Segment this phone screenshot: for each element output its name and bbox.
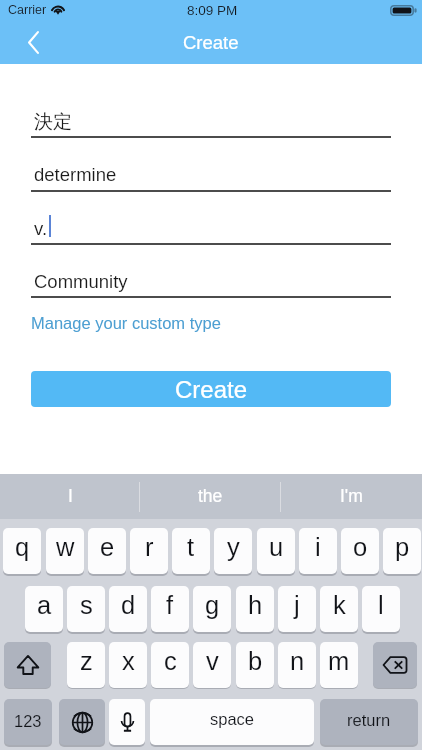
staticText: y [227, 533, 240, 561]
staticText: b [248, 647, 263, 675]
button[interactable]: Manage your custom type [31, 314, 221, 332]
button[interactable]: q [3, 528, 41, 574]
button[interactable]: Dictate [109, 699, 145, 745]
button[interactable]: i [299, 528, 337, 574]
button[interactable]: y [214, 528, 252, 574]
staticText: v [206, 647, 219, 675]
staticText: t [187, 533, 195, 561]
button[interactable]: v [193, 642, 231, 688]
staticText: determine [34, 164, 117, 185]
staticText: g [205, 591, 220, 619]
staticText: o [353, 533, 368, 561]
staticText: I'm [340, 486, 363, 506]
staticText: Create [183, 32, 239, 53]
staticText: m [328, 647, 350, 675]
staticText: w [56, 533, 75, 561]
staticText: 決定 [34, 110, 72, 134]
staticText: c [164, 647, 177, 675]
button[interactable]: b [236, 642, 274, 688]
staticText: Create [175, 376, 248, 403]
button[interactable]: return [320, 699, 418, 745]
button[interactable]: m [320, 642, 358, 688]
button[interactable]: a [25, 586, 63, 632]
staticText: r [145, 533, 154, 561]
button[interactable]: r [130, 528, 168, 574]
button[interactable]: Backspace [373, 642, 417, 688]
button[interactable]: I'm [281, 474, 422, 519]
staticText: i [315, 533, 321, 561]
button[interactable]: Create [31, 371, 391, 407]
button[interactable]: o [341, 528, 379, 574]
staticText: the [198, 486, 223, 506]
button[interactable]: x [109, 642, 147, 688]
staticText: return [347, 711, 391, 729]
staticText: x [122, 647, 135, 675]
button[interactable]: c [151, 642, 189, 688]
button[interactable]: z [67, 642, 105, 688]
staticText: a [37, 591, 52, 619]
staticText: I [68, 486, 73, 506]
staticText: Manage your custom type [31, 314, 221, 332]
staticText: j [294, 591, 300, 619]
button[interactable]: the [140, 474, 281, 519]
button[interactable]: g [193, 586, 231, 632]
button[interactable]: n [278, 642, 316, 688]
staticText: 123 [14, 712, 42, 730]
staticText: z [80, 647, 93, 675]
button[interactable]: l [362, 586, 400, 632]
button[interactable]: p [383, 528, 421, 574]
button[interactable]: t [172, 528, 210, 574]
button[interactable]: Shift [4, 642, 51, 688]
button[interactable]: w [46, 528, 84, 574]
button[interactable]: Back [12, 21, 55, 64]
staticText: s [80, 591, 93, 619]
button[interactable]: 123 [4, 699, 52, 745]
button[interactable]: I [0, 474, 140, 519]
staticText: p [395, 533, 410, 561]
staticText: Community [34, 271, 128, 292]
button[interactable]: s [67, 586, 105, 632]
staticText: n [290, 647, 305, 675]
button[interactable]: j [278, 586, 316, 632]
button[interactable]: e [88, 528, 126, 574]
staticText: e [100, 533, 115, 561]
button[interactable]: Next keyboard [59, 699, 105, 745]
staticText: l [378, 591, 384, 619]
staticText: d [121, 591, 136, 619]
staticText: Carrier [8, 3, 47, 17]
button[interactable]: k [320, 586, 358, 632]
staticText: h [248, 591, 263, 619]
button[interactable]: f [151, 586, 189, 632]
staticText: u [269, 533, 284, 561]
button[interactable]: space [150, 699, 314, 745]
staticText: k [333, 591, 346, 619]
staticText: 8:09 PM [187, 3, 238, 18]
button[interactable]: d [109, 586, 147, 632]
staticText: v. [34, 218, 48, 239]
staticText: space [210, 710, 255, 728]
staticText: q [15, 533, 30, 561]
staticText: f [166, 591, 174, 619]
button[interactable]: h [236, 586, 274, 632]
button[interactable]: u [257, 528, 295, 574]
